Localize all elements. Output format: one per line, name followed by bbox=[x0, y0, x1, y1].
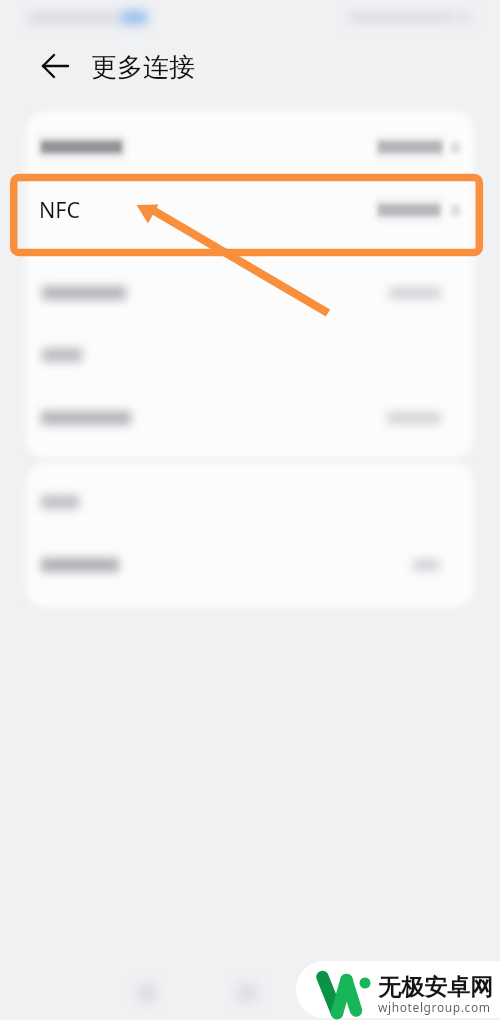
button[interactable]: NFC bbox=[26, 177, 474, 254]
button[interactable]: Connection setting 4 bbox=[26, 324, 474, 386]
staticText: wjhotelgroup.com bbox=[378, 999, 491, 1015]
staticText: NFC bbox=[39, 195, 81, 224]
button[interactable]: wjhotelgroup.com watermark bbox=[296, 961, 500, 1018]
button[interactable]: Connection setting 3 bbox=[26, 262, 474, 324]
button[interactable]: Home bbox=[215, 966, 279, 1020]
button[interactable]: Recents bbox=[115, 966, 179, 1020]
button[interactable]: Back bbox=[37, 50, 69, 82]
button[interactable]: Back bbox=[315, 966, 379, 1020]
staticText: 无极安卓网 bbox=[378, 973, 493, 1002]
button[interactable]: Connection setting 5 bbox=[26, 387, 474, 449]
button[interactable]: Connection setting 7 bbox=[26, 535, 474, 597]
staticText: 更多连接 bbox=[91, 51, 195, 84]
button[interactable]: Connection setting 6 bbox=[26, 471, 474, 533]
button[interactable]: Connection setting 1 bbox=[26, 111, 474, 175]
